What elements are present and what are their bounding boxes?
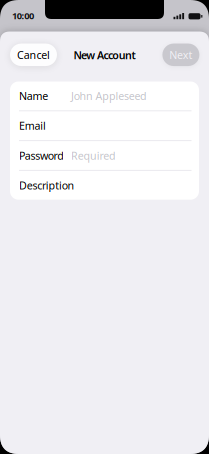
button[interactable]: Description bbox=[10, 171, 199, 200]
button[interactable]: Next bbox=[162, 43, 199, 66]
staticText: Password bbox=[19, 148, 64, 163]
staticText: John Appleseed bbox=[71, 89, 147, 103]
staticText: Cancel bbox=[17, 48, 50, 62]
staticText: Next bbox=[169, 48, 193, 62]
button[interactable]: Email bbox=[10, 111, 199, 140]
staticText: Description bbox=[19, 178, 74, 192]
button[interactable]: Password bbox=[10, 141, 199, 170]
staticText: 10:00 bbox=[12, 9, 34, 22]
staticText: New Account bbox=[73, 48, 135, 62]
staticText: Name bbox=[19, 89, 48, 103]
staticText: Required bbox=[71, 148, 116, 163]
button[interactable]: Name bbox=[10, 81, 199, 110]
button[interactable]: Cancel bbox=[10, 43, 57, 66]
staticText: Email bbox=[19, 119, 46, 133]
